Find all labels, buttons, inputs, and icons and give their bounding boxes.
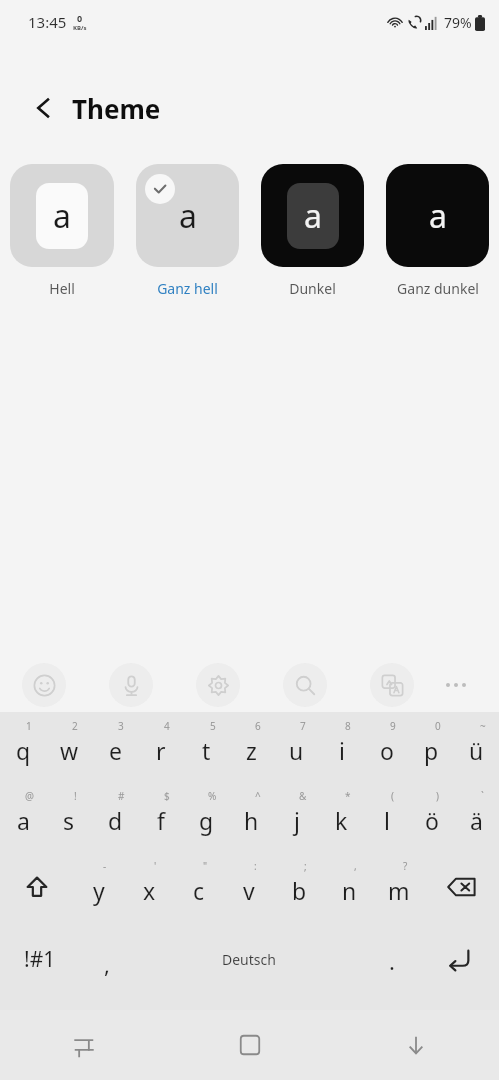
staticText: w <box>60 735 79 766</box>
button[interactable]: ) <box>409 782 454 852</box>
button[interactable]: a <box>10 164 114 298</box>
staticText: a <box>304 194 322 238</box>
staticText: s <box>63 805 75 836</box>
button[interactable]: . <box>364 922 419 996</box>
staticText: ( <box>391 789 394 803</box>
staticText: d <box>108 805 123 836</box>
staticText: z <box>246 735 257 766</box>
button[interactable]: 1 <box>0 712 46 782</box>
button[interactable]: 2 <box>46 712 92 782</box>
button[interactable]: Settings <box>196 663 240 707</box>
staticText: y <box>93 875 105 906</box>
staticText: 0 <box>435 719 441 733</box>
button[interactable]: Hide keyboard <box>333 1010 499 1080</box>
staticText: n <box>342 875 357 906</box>
staticText: ä <box>470 805 483 836</box>
staticText: a <box>53 194 71 238</box>
button[interactable]: , <box>324 852 374 922</box>
staticText: Dunkel <box>289 279 336 298</box>
button[interactable]: Backspace <box>424 852 499 922</box>
button[interactable]: 7 <box>274 712 319 782</box>
button[interactable]: Recents <box>0 1010 167 1080</box>
staticText: Ganz hell <box>157 279 218 298</box>
button[interactable]: More options <box>438 667 474 703</box>
staticText: m <box>388 875 410 906</box>
button[interactable]: Voice input <box>109 663 153 707</box>
button[interactable]: ^ <box>229 782 274 852</box>
staticText: a <box>179 194 197 238</box>
staticText: . <box>389 946 395 976</box>
button[interactable]: ` <box>454 782 499 852</box>
button[interactable]: Enter <box>419 922 499 996</box>
button[interactable]: Deutsch <box>134 922 364 996</box>
button[interactable]: 0 <box>409 712 454 782</box>
button[interactable]: 8 <box>319 712 364 782</box>
button[interactable]: & <box>274 782 319 852</box>
staticText: a <box>17 805 30 836</box>
button[interactable]: % <box>184 782 229 852</box>
button[interactable]: ? <box>374 852 424 922</box>
button[interactable]: " <box>174 852 224 922</box>
staticText: !#1 <box>24 945 56 974</box>
button[interactable]: ~ <box>454 712 499 782</box>
staticText: & <box>299 789 307 803</box>
staticText: ~ <box>480 719 486 733</box>
staticText: - <box>103 859 107 873</box>
staticText: ` <box>481 789 484 803</box>
staticText: c <box>193 875 205 906</box>
staticText: i <box>339 735 345 766</box>
button[interactable]: Home <box>167 1010 333 1080</box>
staticText: r <box>156 735 166 766</box>
staticText: ) <box>436 789 439 803</box>
staticText: " <box>203 859 208 873</box>
button[interactable]: * <box>319 782 364 852</box>
staticText: 9 <box>390 719 396 733</box>
button[interactable]: # <box>92 782 138 852</box>
staticText: 79% <box>444 13 472 32</box>
staticText: a <box>429 194 447 238</box>
staticText: ^ <box>255 789 261 803</box>
staticText: Hell <box>49 279 75 298</box>
staticText: o <box>380 735 394 766</box>
button[interactable]: Emoji <box>22 663 66 707</box>
staticText: * <box>345 789 351 803</box>
staticText: t <box>202 735 211 766</box>
staticText: ü <box>469 735 484 766</box>
staticText: ' <box>154 859 157 873</box>
button[interactable]: Translate <box>370 663 414 707</box>
button[interactable]: 3 <box>92 712 138 782</box>
button[interactable]: $ <box>138 782 184 852</box>
button[interactable]: Search <box>283 663 327 707</box>
staticText: ö <box>425 805 439 836</box>
staticText: x <box>143 875 156 906</box>
button[interactable]: a <box>261 164 364 298</box>
staticText: Ganz dunkel <box>397 279 479 298</box>
button[interactable]: a <box>386 164 489 298</box>
button[interactable]: ( <box>364 782 409 852</box>
button[interactable]: @ <box>0 782 46 852</box>
button[interactable]: Shift <box>0 852 74 922</box>
button[interactable]: !#1 <box>0 922 79 996</box>
button[interactable]: a <box>136 164 239 298</box>
staticText: , <box>354 859 357 873</box>
staticText: b <box>292 875 307 906</box>
button[interactable]: - <box>74 852 124 922</box>
staticText: g <box>199 805 214 836</box>
button[interactable]: ! <box>46 782 92 852</box>
staticText: 13:45 <box>28 12 67 32</box>
staticText: @ <box>25 789 34 803</box>
button[interactable]: 5 <box>184 712 229 782</box>
button[interactable]: ; <box>274 852 324 922</box>
staticText: q <box>16 735 31 766</box>
button[interactable]: Back <box>24 88 64 128</box>
button[interactable]: , <box>79 922 134 996</box>
button[interactable]: : <box>224 852 274 922</box>
staticText: v <box>243 875 255 906</box>
button[interactable]: 6 <box>229 712 274 782</box>
staticText: 1 <box>26 719 32 733</box>
staticText: ? <box>403 859 408 873</box>
button[interactable]: 9 <box>364 712 409 782</box>
button[interactable]: ' <box>124 852 174 922</box>
button[interactable]: 4 <box>138 712 184 782</box>
staticText: h <box>244 805 259 836</box>
